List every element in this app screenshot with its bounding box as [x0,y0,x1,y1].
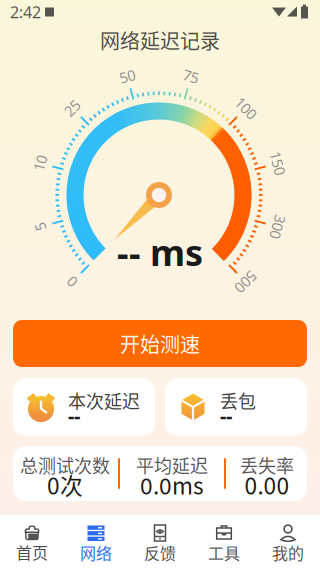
staticText: 75 [183,66,199,86]
staticText: -- ms [117,228,203,276]
staticText: -- [220,402,232,429]
button[interactable]: 本次延迟 [13,378,155,436]
staticText: 25 [64,98,80,118]
staticText: 50 [119,66,135,86]
staticText: 网络延迟记录 [100,25,220,54]
staticText: 本次延迟 [68,387,140,414]
staticText: 总测试次数 [20,452,110,478]
staticText: 首页 [16,540,48,564]
staticText: 丢失率 [240,452,294,478]
staticText: 开始测速 [120,329,200,358]
staticText: 工具 [208,541,240,564]
staticText: 反馈 [144,541,176,564]
staticText: 100 [234,98,258,118]
button[interactable]: 网络 [64,515,128,567]
button[interactable]: 丢包 [165,378,307,436]
staticText: 500 [234,272,258,292]
staticText: 150 [266,153,290,173]
button[interactable]: 反馈 [128,515,192,567]
staticText: 10 [32,153,48,173]
staticText: 丢包 [220,387,256,414]
staticText: 300 [266,217,290,237]
staticText: 网络 [80,541,112,564]
button[interactable]: 首页 [0,515,64,567]
staticText: 0.0ms [140,468,204,501]
staticText: 0次 [47,468,83,501]
staticText: 5 [36,217,44,237]
button[interactable]: 我的 [256,515,320,567]
staticText: 0.00 [244,468,289,501]
staticText: 平均延迟 [136,452,208,478]
button[interactable]: 工具 [192,515,256,567]
staticText: 2:42 [10,1,41,23]
button[interactable]: 开始测速 [13,320,307,367]
staticText: 我的 [272,541,304,564]
staticText: -- [68,402,80,429]
staticText: 0 [68,272,76,292]
